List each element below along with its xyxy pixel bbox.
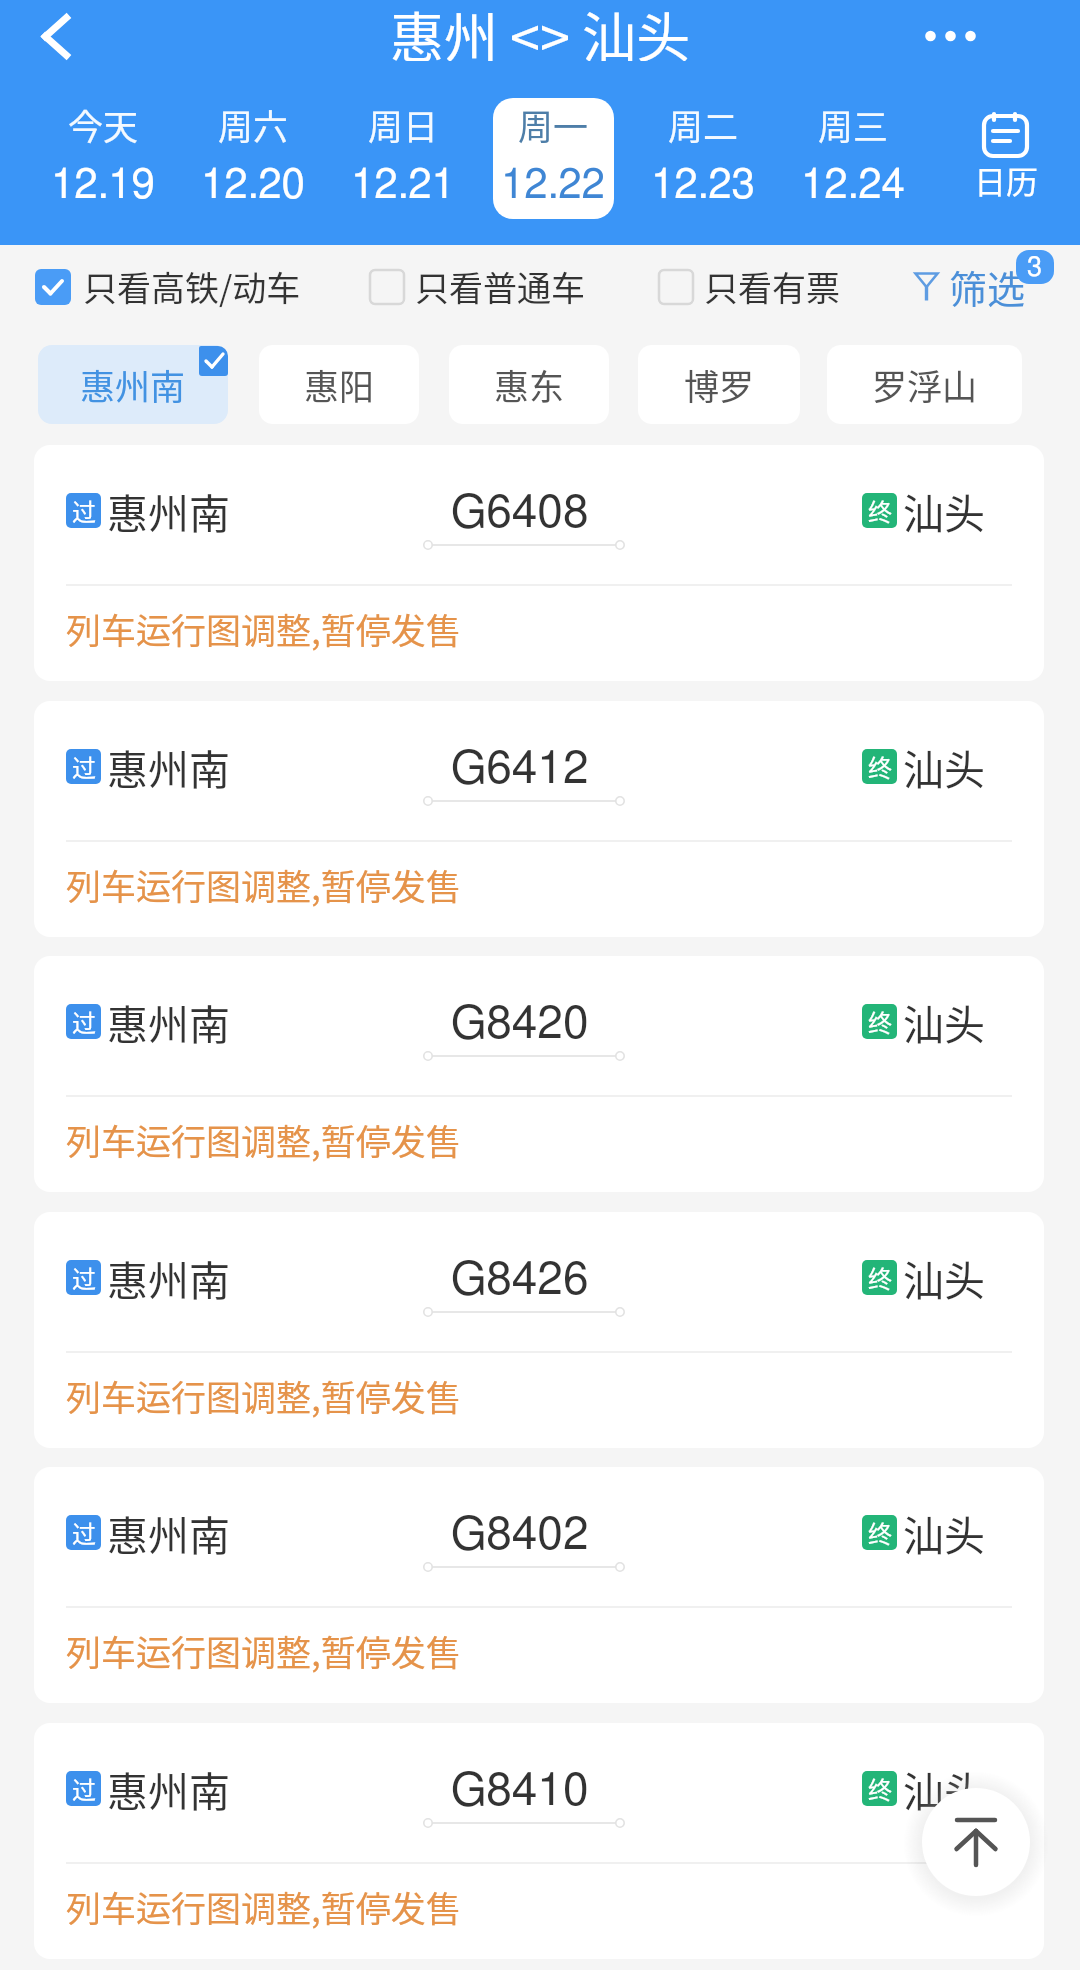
staticText: 过 xyxy=(72,493,96,528)
staticText: 12.21 xyxy=(351,164,455,206)
staticText: G8410 xyxy=(451,1768,589,1814)
staticText: 12.22 xyxy=(501,164,605,206)
staticText: 12.20 xyxy=(201,164,305,206)
staticText: 3 xyxy=(1027,254,1043,281)
staticText: 终 xyxy=(868,1004,892,1039)
staticText: 过 xyxy=(72,1771,96,1806)
staticText: 博罗 xyxy=(684,359,755,410)
staticText: 过 xyxy=(72,1004,96,1039)
staticText: 终 xyxy=(868,1771,892,1806)
button[interactable]: More options xyxy=(902,0,998,72)
staticText: G8426 xyxy=(451,1257,589,1303)
staticText: 周二 xyxy=(668,99,739,150)
staticText: 惠阳 xyxy=(304,359,375,410)
staticText: 只看普通车 xyxy=(415,262,585,311)
button[interactable]: 周一 xyxy=(478,88,628,228)
button[interactable]: Scroll to top xyxy=(922,1788,1030,1896)
button[interactable]: 今天 xyxy=(28,88,178,228)
button[interactable]: Back xyxy=(11,0,105,72)
button[interactable]: 惠阳 xyxy=(259,345,419,424)
staticText: 列车运行图调整,暂停发售 xyxy=(66,1114,461,1165)
staticText: 过 xyxy=(72,1260,96,1295)
staticText: 列车运行图调整,暂停发售 xyxy=(66,859,461,910)
staticText: 终 xyxy=(868,1260,892,1295)
staticText: 终 xyxy=(868,749,892,784)
staticText: 汕头 xyxy=(903,1248,985,1307)
staticText: 列车运行图调整,暂停发售 xyxy=(66,1625,461,1676)
staticText: 周三 xyxy=(818,99,889,150)
staticText: 列车运行图调整,暂停发售 xyxy=(66,1881,461,1932)
button[interactable]: 周三 xyxy=(778,88,928,228)
staticText: 列车运行图调整,暂停发售 xyxy=(66,1370,461,1421)
staticText: 终 xyxy=(868,1515,892,1550)
staticText: 惠州南 xyxy=(107,992,230,1051)
button[interactable]: 过 xyxy=(34,1467,1044,1703)
button[interactable]: 只看普通车 xyxy=(369,262,585,311)
button[interactable]: 过 xyxy=(34,1723,1044,1959)
staticText: 汕头 xyxy=(903,737,985,796)
staticText: 12.24 xyxy=(801,164,905,206)
button[interactable]: 筛选 xyxy=(914,254,1044,318)
staticText: 周一 xyxy=(518,99,589,150)
staticText: 惠州南 xyxy=(107,737,230,796)
staticText: G6412 xyxy=(451,746,589,792)
staticText: 只看高铁/动车 xyxy=(83,262,301,311)
staticText: 周日 xyxy=(368,99,439,150)
staticText: 惠州南 xyxy=(107,481,230,540)
staticText: 惠东 xyxy=(494,359,565,410)
button[interactable]: 周六 xyxy=(178,88,328,228)
staticText: 终 xyxy=(868,493,892,528)
staticText: 12.23 xyxy=(651,164,755,206)
staticText: 汕头 xyxy=(903,992,985,1051)
staticText: 12.19 xyxy=(51,164,155,206)
button[interactable]: 周日 xyxy=(328,88,478,228)
staticText: 惠州南 xyxy=(107,1759,230,1818)
staticText: 列车运行图调整,暂停发售 xyxy=(66,603,461,654)
button[interactable]: 过 xyxy=(34,701,1044,937)
staticText: 今天 xyxy=(68,99,139,150)
staticText: 只看有票 xyxy=(704,262,840,311)
button[interactable]: 惠东 xyxy=(449,345,609,424)
staticText: 惠州南 xyxy=(107,1503,230,1562)
button[interactable]: 博罗 xyxy=(638,345,800,424)
staticText: 汕头 xyxy=(903,481,985,540)
staticText: 惠州 <> 汕头 xyxy=(390,0,691,61)
staticText: 惠州南 xyxy=(80,359,186,410)
button[interactable]: 周二 xyxy=(628,88,778,228)
button[interactable]: 只看高铁/动车 xyxy=(35,262,301,311)
button[interactable]: 只看有票 xyxy=(658,262,840,311)
staticText: G8402 xyxy=(451,1512,589,1558)
staticText: G6408 xyxy=(451,490,589,536)
button[interactable]: 过 xyxy=(34,445,1044,681)
staticText: 过 xyxy=(72,1515,96,1550)
button[interactable]: 罗浮山 xyxy=(827,345,1022,424)
staticText: 惠州南 xyxy=(107,1248,230,1307)
button[interactable]: 日历 xyxy=(930,90,1080,225)
staticText: 罗浮山 xyxy=(872,359,978,410)
button[interactable]: 过 xyxy=(34,956,1044,1192)
staticText: 筛选 xyxy=(949,259,1026,314)
staticText: 汕头 xyxy=(903,1759,985,1818)
button[interactable]: 过 xyxy=(34,1212,1044,1448)
staticText: 过 xyxy=(72,749,96,784)
button[interactable]: 惠州南 xyxy=(38,345,228,424)
staticText: 日历 xyxy=(974,157,1039,201)
staticText: 周六 xyxy=(218,99,289,150)
staticText: 汕头 xyxy=(903,1503,985,1562)
staticText: G8420 xyxy=(451,1001,589,1047)
